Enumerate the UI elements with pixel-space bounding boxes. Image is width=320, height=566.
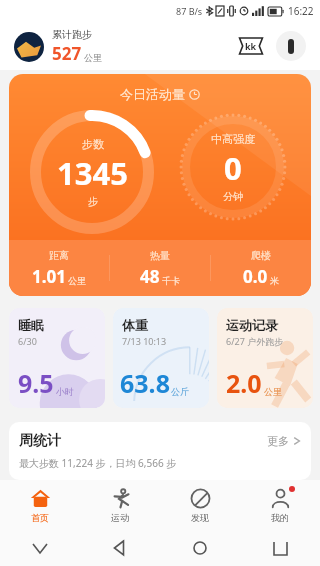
staticText: 睡眠	[18, 317, 44, 333]
staticText: 1.01	[32, 265, 66, 288]
button[interactable]: 运动记录	[217, 308, 313, 408]
button[interactable]: 累计跑步	[14, 28, 102, 65]
staticText: 更多	[267, 434, 289, 448]
button[interactable]: 距离	[9, 249, 109, 288]
staticText: 累计跑步	[52, 28, 92, 41]
staticText: 最大步数 11,224 步，日均 6,566 步	[19, 456, 177, 470]
staticText: 千卡	[162, 275, 180, 286]
staticText: 1345	[57, 152, 128, 194]
staticText: 小时	[56, 386, 74, 397]
button[interactable]: 体重	[113, 308, 209, 408]
staticText: 分钟	[223, 190, 243, 203]
staticText: 公斤	[171, 386, 189, 397]
staticText: 运动记录	[226, 317, 278, 333]
staticText: 9.5	[18, 366, 54, 400]
button[interactable]: 爬楼	[211, 249, 311, 288]
button[interactable]: 发现	[160, 482, 240, 529]
staticText: 6/30	[18, 335, 37, 347]
button[interactable]: 热量	[110, 249, 210, 288]
button[interactable]: Hide keyboard	[0, 544, 80, 553]
staticText: 热量	[150, 249, 170, 262]
button[interactable]: 我的	[240, 482, 320, 529]
staticText: 16:22	[288, 4, 314, 18]
staticText: 我的	[271, 512, 289, 523]
staticText: 步	[88, 195, 98, 208]
staticText: 0	[224, 147, 242, 189]
button[interactable]: 睡眠	[9, 308, 105, 408]
staticText: 63.8	[120, 366, 170, 400]
staticText: 发现	[191, 512, 209, 523]
staticText: 公里	[264, 386, 282, 397]
staticText: 0.0	[243, 265, 268, 288]
staticText: 运动	[111, 512, 129, 523]
button[interactable]: Device	[276, 31, 306, 61]
staticText: 中高强度	[211, 132, 255, 146]
staticText: 7/13 10:13	[122, 335, 167, 347]
staticText: 公里	[84, 52, 102, 63]
staticText: 周统计	[19, 432, 61, 450]
staticText: 527	[52, 42, 82, 65]
staticText: 步数	[82, 137, 104, 151]
staticText: 距离	[49, 249, 69, 262]
button[interactable]: Back	[80, 541, 160, 555]
button[interactable]: 今日活动量	[9, 74, 311, 296]
staticText: 6/27 户外跑步	[226, 335, 284, 347]
staticText: 今日活动量	[120, 86, 185, 102]
button[interactable]: 首页	[0, 482, 80, 529]
button[interactable]: Home	[160, 541, 240, 555]
staticText: 公里	[68, 275, 86, 286]
button[interactable]: KK	[234, 33, 268, 59]
staticText: 2.0	[226, 366, 262, 400]
button[interactable]: 运动	[80, 482, 160, 529]
staticText: 87 B/s	[176, 5, 203, 17]
button[interactable]: Recents	[240, 542, 320, 555]
button[interactable]: 周统计	[9, 422, 311, 480]
staticText: 48	[140, 265, 160, 288]
staticText: kk	[245, 40, 257, 52]
staticText: 米	[270, 275, 279, 286]
staticText: 首页	[31, 512, 49, 523]
staticText: 体重	[122, 317, 148, 333]
staticText: 爬楼	[251, 249, 271, 262]
